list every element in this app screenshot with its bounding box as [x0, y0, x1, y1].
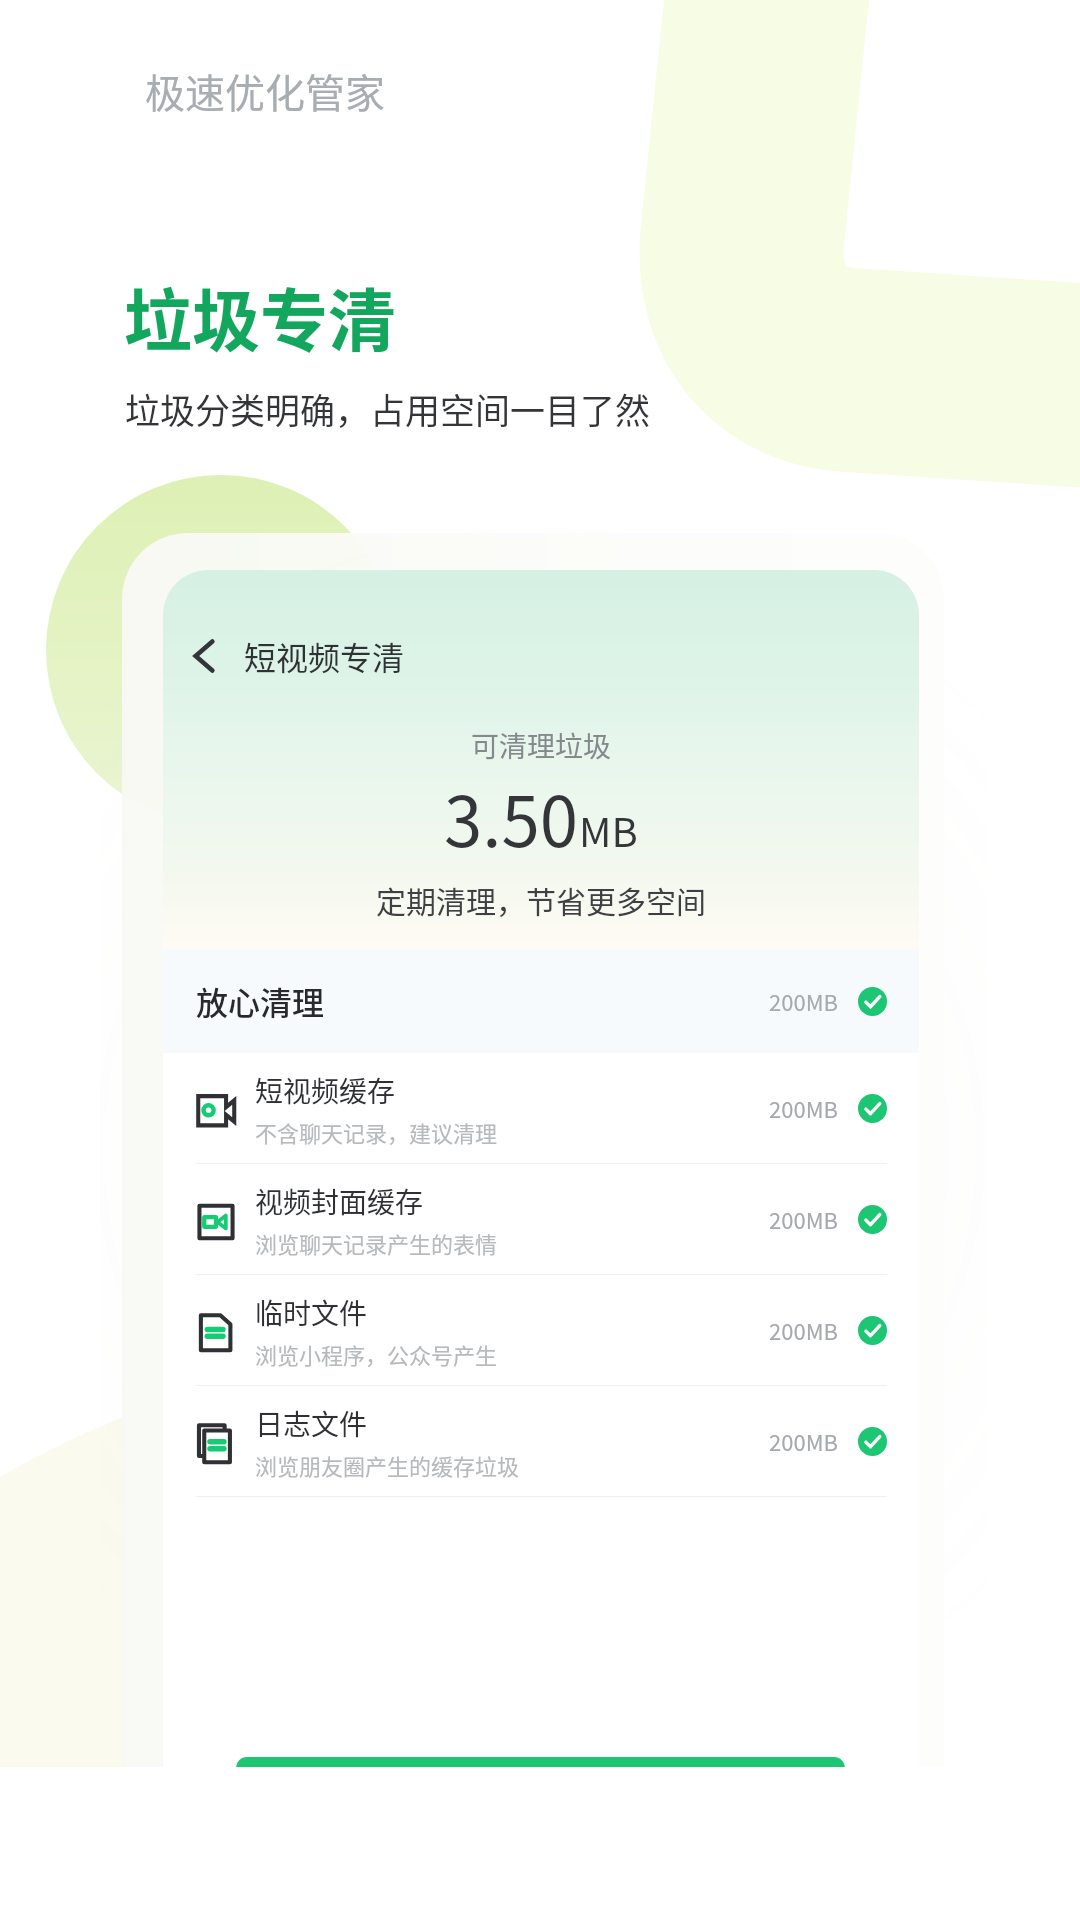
button[interactable]: 视频封面缓存: [163, 1164, 919, 1274]
staticText: 短视频专清: [244, 633, 405, 679]
staticText: 放心清理: [196, 978, 325, 1024]
button[interactable]: 临时文件: [163, 1275, 919, 1385]
staticText: 不含聊天记录，建议清理: [255, 1116, 498, 1148]
button[interactable]: 一键清理: [236, 1757, 845, 1767]
staticText: 200MB: [769, 1203, 838, 1235]
button[interactable]: 放心清理: [163, 949, 919, 1053]
staticText: 垃圾专清: [124, 267, 397, 365]
staticText: 垃圾分类明确，占用空间一目了然: [125, 383, 651, 434]
staticText: 视频封面缓存: [255, 1181, 424, 1222]
staticText: 3.50: [444, 767, 579, 867]
staticText: 可清理垃圾: [471, 725, 612, 766]
staticText: 日志文件: [255, 1403, 368, 1444]
staticText: 200MB: [769, 1425, 838, 1457]
staticText: 极速优化管家: [145, 62, 385, 120]
staticText: 临时文件: [255, 1292, 368, 1333]
staticText: 定期清理，节省更多空间: [376, 878, 706, 921]
button[interactable]: 短视频缓存: [163, 1053, 919, 1163]
other: Back: [193, 639, 215, 673]
staticText: 200MB: [769, 1314, 838, 1346]
staticText: 浏览朋友圈产生的缓存垃圾: [255, 1449, 520, 1481]
staticText: 浏览聊天记录产生的表情: [255, 1227, 498, 1259]
staticText: 200MB: [769, 1092, 838, 1124]
staticText: MB: [579, 801, 638, 859]
button[interactable]: Back: [185, 625, 413, 687]
staticText: 短视频缓存: [255, 1070, 396, 1111]
button[interactable]: 日志文件: [163, 1386, 919, 1496]
staticText: 浏览小程序，公众号产生: [255, 1338, 498, 1370]
staticText: 200MB: [769, 985, 838, 1017]
